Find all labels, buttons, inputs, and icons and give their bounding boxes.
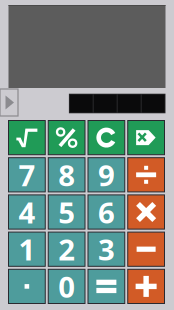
button[interactable]: Square root	[8, 120, 45, 155]
staticText: 2	[58, 230, 75, 269]
button[interactable]: Minus	[128, 232, 165, 266]
staticText: 5	[58, 192, 75, 231]
button[interactable]: Equals	[88, 269, 125, 303]
button[interactable]: 0	[48, 269, 85, 303]
button[interactable]: Decimal point	[8, 269, 45, 303]
button[interactable]: Run	[0, 89, 18, 116]
button[interactable]: 1	[8, 232, 45, 266]
staticText: 6	[98, 192, 115, 231]
button[interactable]: 4	[8, 195, 45, 229]
button[interactable]: 7	[8, 158, 45, 192]
staticText: 4	[18, 192, 35, 231]
button[interactable]: Percent	[48, 120, 85, 155]
staticText: 0	[58, 267, 75, 306]
button[interactable]: 2	[48, 232, 85, 266]
button[interactable]: Backspace	[128, 120, 165, 155]
button[interactable]: Clear	[88, 120, 125, 155]
staticText: 7	[18, 155, 35, 194]
button[interactable]: Multiply	[128, 195, 165, 229]
button[interactable]: Divide	[128, 158, 165, 192]
staticText: 3	[98, 230, 115, 269]
button[interactable]: 9	[88, 158, 125, 192]
button[interactable]: 5	[48, 195, 85, 229]
button[interactable]: Plus	[128, 269, 165, 303]
staticText: 1	[18, 230, 35, 269]
button[interactable]: 3	[88, 232, 125, 266]
button[interactable]: 8	[48, 158, 85, 192]
staticText: 9	[98, 155, 115, 194]
staticText: 8	[58, 155, 75, 194]
button[interactable]: 6	[88, 195, 125, 229]
